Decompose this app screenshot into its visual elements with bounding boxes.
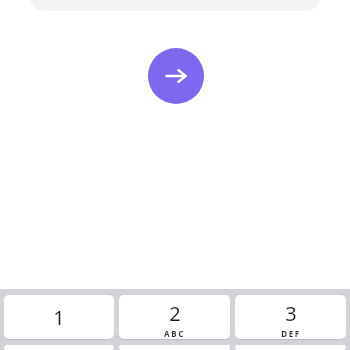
button[interactable]: 2	[119, 295, 230, 339]
button[interactable]: 6	[235, 345, 346, 350]
button[interactable]: Continue	[148, 48, 204, 104]
staticText: DEF	[281, 328, 301, 339]
button[interactable]: 5	[119, 345, 230, 350]
staticText: 2	[169, 300, 181, 327]
button[interactable]: 1	[4, 295, 114, 339]
button[interactable]: 3	[235, 295, 346, 339]
staticText: 1	[53, 304, 65, 331]
staticText: 3	[285, 300, 297, 327]
staticText: ABC	[164, 328, 185, 339]
button[interactable]: 4	[4, 345, 114, 350]
